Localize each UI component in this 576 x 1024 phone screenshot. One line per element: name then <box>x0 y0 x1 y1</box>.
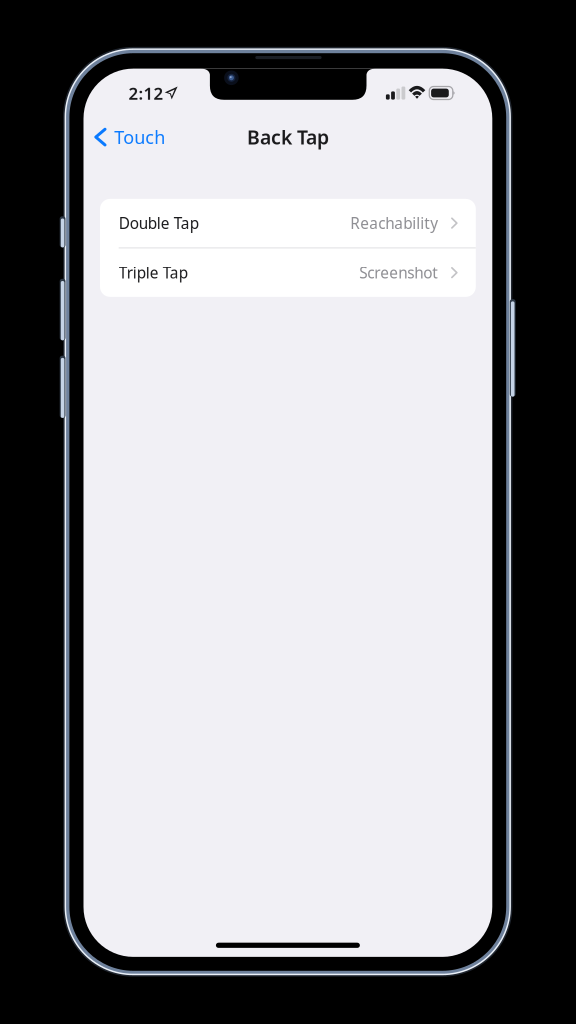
staticText: Touch <box>114 125 165 149</box>
staticText: Screenshot <box>359 262 438 283</box>
button[interactable]: Touch <box>83 115 173 159</box>
button[interactable]: Double Tap <box>100 199 476 247</box>
button[interactable]: Triple Tap <box>100 248 476 297</box>
staticText: Back Tap <box>247 124 329 150</box>
staticText: 2:12 <box>128 82 163 105</box>
staticText: Reachability <box>350 213 438 234</box>
staticText: Triple Tap <box>119 262 188 283</box>
staticText: Double Tap <box>119 213 199 234</box>
